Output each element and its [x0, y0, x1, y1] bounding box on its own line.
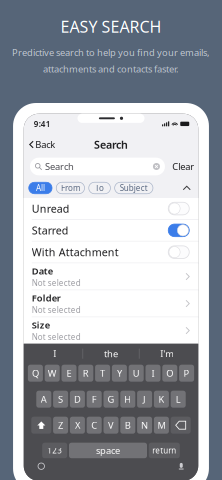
staticText: All [36, 183, 45, 193]
button[interactable]: R [78, 365, 93, 382]
button[interactable]: D [70, 391, 85, 408]
button[interactable]: Dictate [175, 460, 187, 473]
button[interactable]: M [154, 417, 169, 434]
staticText: Not selected [32, 278, 81, 288]
button[interactable]: G [103, 391, 118, 408]
button[interactable]: A [36, 391, 51, 408]
staticText: Z [58, 419, 63, 431]
button[interactable]: V [103, 417, 118, 434]
button[interactable]: Size [24, 317, 198, 344]
button[interactable]: X [70, 417, 85, 434]
staticText: X [75, 419, 80, 431]
button[interactable]: H [120, 391, 135, 408]
button[interactable]: B [120, 417, 135, 434]
button[interactable]: Subject [115, 182, 153, 194]
staticText: J [143, 393, 146, 405]
staticText: Predictive search to help you find your … [12, 46, 210, 59]
staticText: W [48, 367, 57, 379]
button[interactable]: Collapse filters [180, 182, 193, 194]
button[interactable]: U [129, 365, 144, 382]
button[interactable]: the [83, 344, 139, 364]
staticText: D [74, 393, 81, 405]
staticText: Search [94, 137, 128, 152]
button[interactable]: I [145, 365, 160, 382]
staticText: From [61, 183, 80, 193]
staticText: Starred [32, 223, 69, 237]
button[interactable]: Clear text [153, 163, 160, 170]
button[interactable]: P [179, 365, 194, 382]
staticText: the [104, 347, 118, 360]
button[interactable]: Folder [24, 290, 198, 317]
staticText: With Attachment [32, 245, 119, 259]
button[interactable]: Unread [24, 198, 198, 219]
staticText: Search [45, 160, 74, 173]
button[interactable]: Clear [168, 157, 198, 176]
button[interactable]: With Attachment [24, 242, 198, 263]
button[interactable]: S [53, 391, 68, 408]
staticText: P [184, 367, 190, 379]
button[interactable]: Z [53, 417, 68, 434]
staticText: R [83, 367, 89, 379]
button[interactable]: Emoji [35, 460, 48, 473]
button[interactable]: N [137, 417, 152, 434]
staticText: To [95, 183, 104, 193]
staticText: Y [117, 367, 122, 379]
staticText: T [100, 367, 105, 379]
button[interactable]: return [149, 443, 180, 458]
button[interactable]: I'm [139, 344, 195, 364]
button[interactable]: Delete [171, 417, 191, 434]
staticText: C [91, 419, 97, 431]
staticText: V [108, 419, 114, 431]
staticText: I [151, 367, 154, 379]
button[interactable]: All [29, 182, 52, 194]
button[interactable]: To [89, 182, 110, 194]
staticText: I [53, 347, 56, 360]
staticText: Date [32, 265, 53, 277]
staticText: Subject [120, 183, 148, 193]
staticText: L [176, 393, 181, 405]
staticText: 123 [47, 445, 62, 456]
staticText: O [166, 367, 173, 379]
button[interactable]: 123 [42, 443, 67, 458]
button[interactable]: F [87, 391, 102, 408]
staticText: EASY SEARCH [60, 16, 161, 37]
staticText: E [66, 367, 71, 379]
button[interactable]: Date [24, 263, 198, 290]
staticText: I'm [160, 347, 174, 360]
staticText: U [133, 367, 140, 379]
staticText: Size [32, 319, 50, 331]
button[interactable]: From [56, 182, 84, 194]
button[interactable]: T [95, 365, 110, 382]
staticText: Back [35, 138, 55, 151]
button[interactable]: J [137, 391, 152, 408]
button[interactable]: Shift [31, 417, 51, 434]
button[interactable]: space [69, 443, 147, 458]
staticText: return [152, 445, 176, 456]
button[interactable]: Starred [24, 220, 198, 241]
button[interactable]: W [45, 365, 60, 382]
button[interactable]: L [171, 391, 186, 408]
staticText: space [96, 444, 120, 457]
button[interactable]: Y [112, 365, 127, 382]
staticText: K [158, 393, 164, 405]
staticText: S [58, 393, 63, 405]
button[interactable]: Q [28, 365, 43, 382]
button[interactable]: O [162, 365, 177, 382]
staticText: Unread [32, 201, 70, 216]
button[interactable]: I [27, 344, 82, 364]
staticText: Not selected [32, 305, 81, 315]
staticText: N [141, 419, 148, 431]
button[interactable]: E [61, 365, 76, 382]
staticText: M [157, 419, 165, 431]
button[interactable]: Back [24, 135, 55, 154]
staticText: B [125, 419, 131, 431]
staticText: Q [32, 367, 39, 379]
staticText: Not selected [32, 332, 81, 342]
staticText: H [124, 393, 131, 405]
staticText: G [107, 393, 114, 405]
button[interactable]: K [154, 391, 169, 408]
button[interactable]: C [87, 417, 102, 434]
staticText: A [41, 393, 47, 405]
staticText: 9:41 [34, 118, 51, 129]
staticText: Folder [32, 292, 61, 304]
